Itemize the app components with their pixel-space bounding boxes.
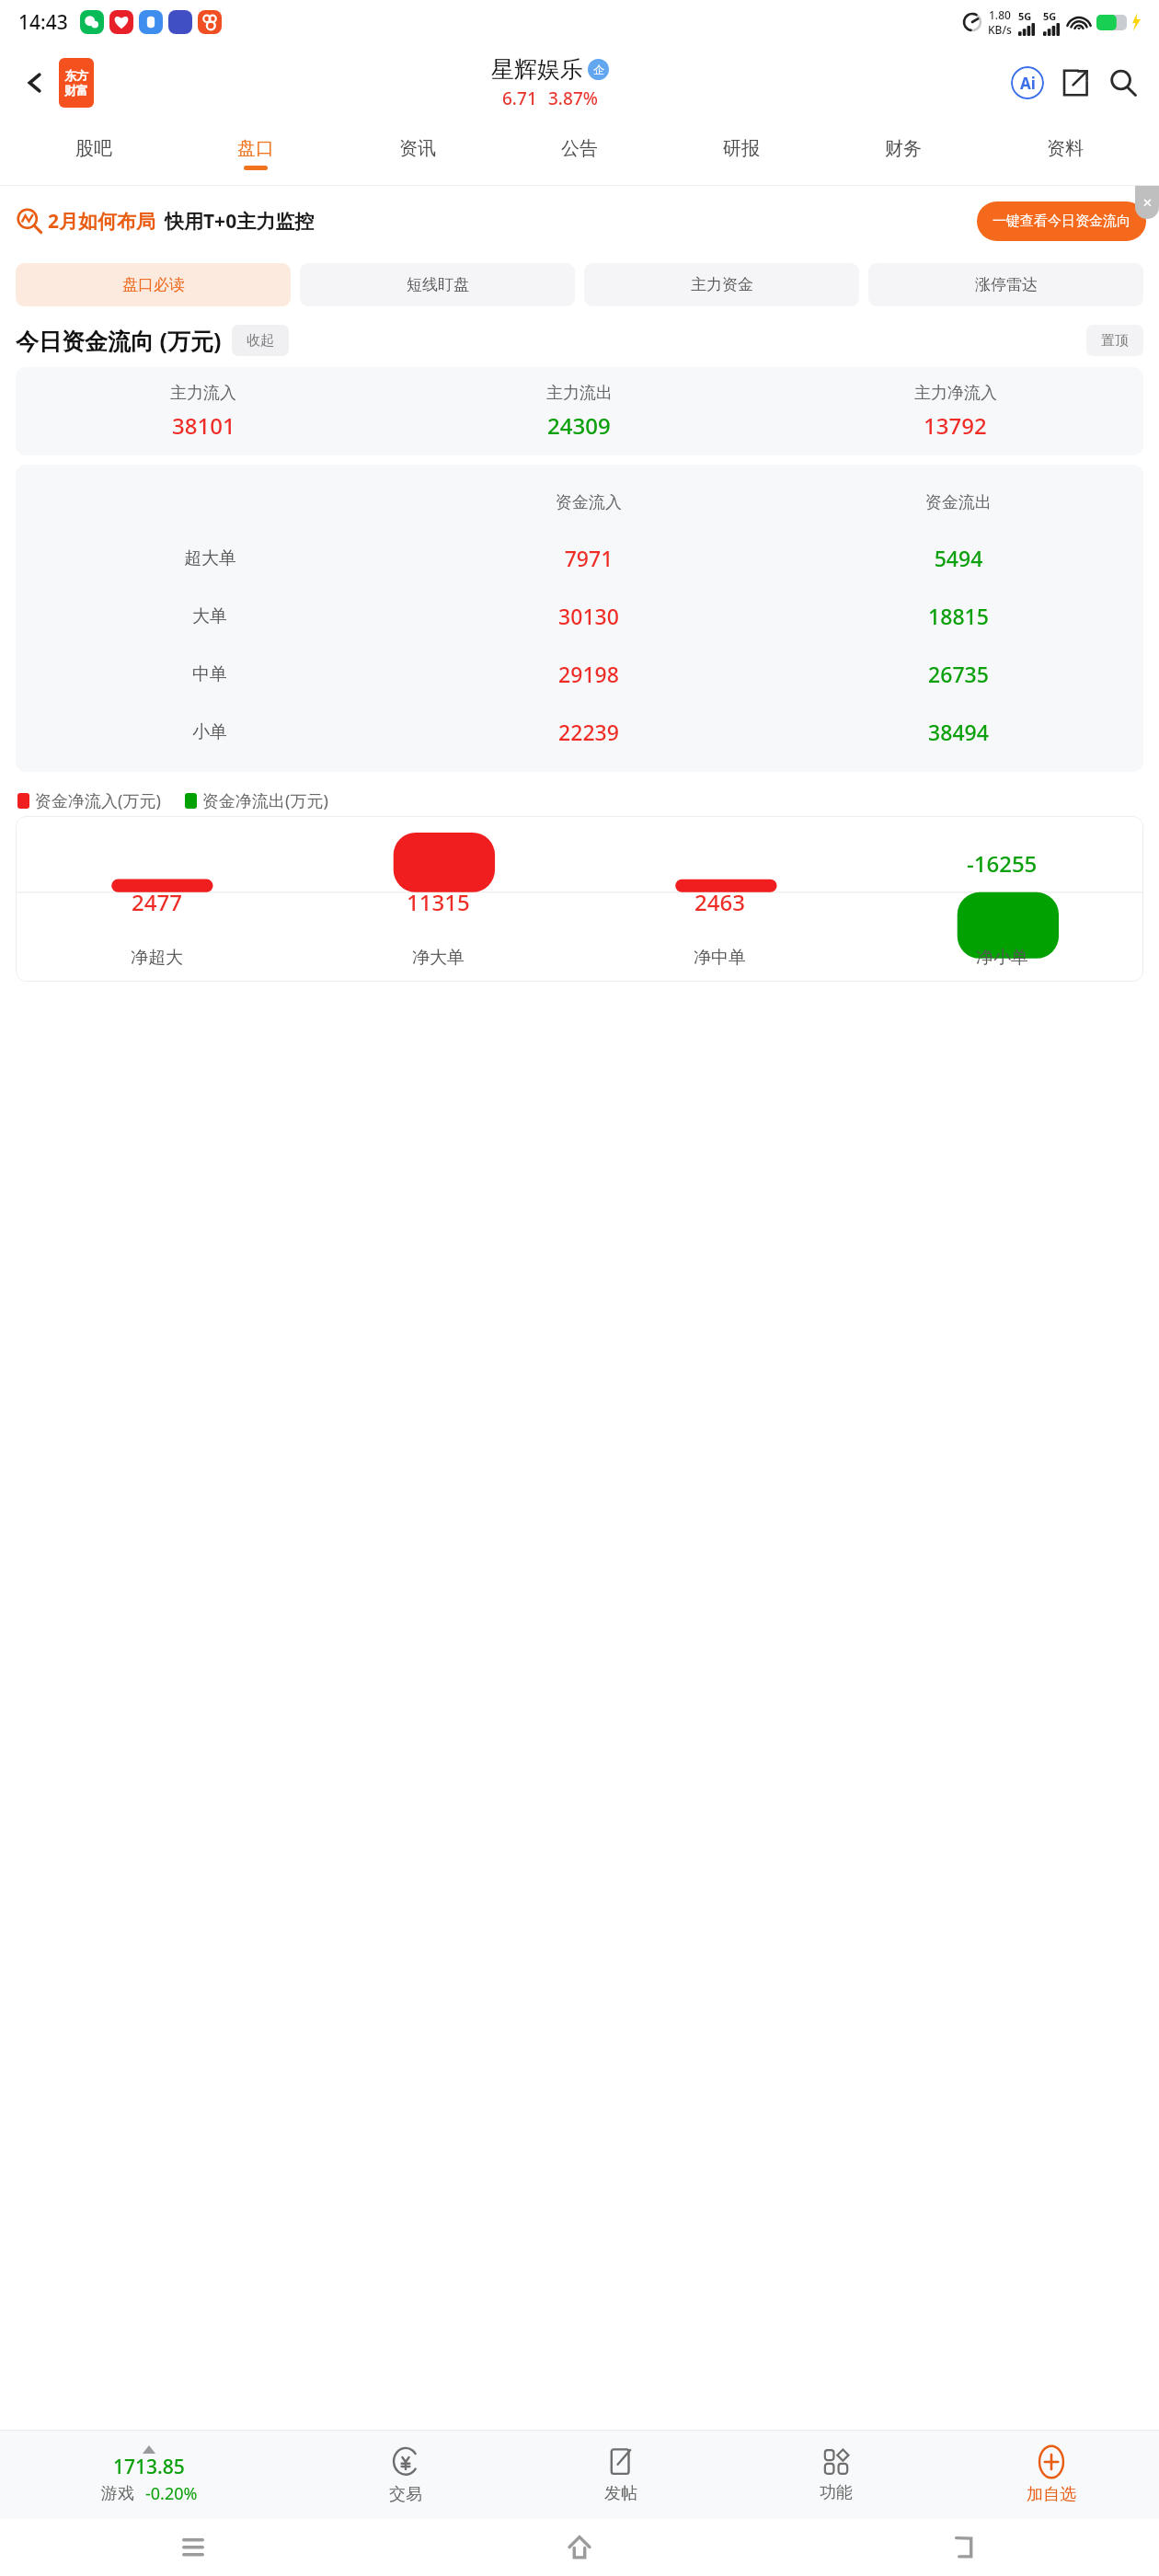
staticText: 主力流入 — [170, 383, 236, 404]
staticText: 30130 — [404, 602, 774, 630]
staticText: 研报 — [723, 137, 760, 160]
button[interactable]: 收起 — [232, 325, 289, 356]
staticText: 资金流出 — [774, 492, 1143, 513]
button[interactable]: 发帖 — [513, 2431, 729, 2519]
button[interactable]: Close — [1135, 186, 1159, 219]
staticText: 5G — [1018, 9, 1032, 23]
button[interactable]: Back — [773, 2519, 1159, 2576]
staticText: -0.20% — [145, 2482, 198, 2505]
button[interactable]: 1713.85 — [0, 2431, 298, 2519]
button[interactable]: 主力资金 — [584, 263, 859, 306]
staticText: 大单 — [192, 605, 227, 627]
staticText: 交易 — [389, 2484, 422, 2505]
staticText: 中单 — [192, 663, 227, 685]
staticText: 主力资金 — [691, 275, 753, 294]
button[interactable]: 主力流入 — [16, 367, 1143, 455]
staticText: -16255 — [967, 848, 1038, 879]
staticText: 5G — [1043, 9, 1057, 23]
staticText: 净中单 — [694, 947, 746, 969]
staticText: 快用T+0主力监控 — [165, 208, 315, 235]
staticText: 企 — [593, 63, 604, 76]
staticText: 资金净流出(万元) — [202, 789, 328, 812]
staticText: 盘口必读 — [122, 275, 185, 294]
staticText: 资金流入 — [404, 492, 774, 513]
staticText: 资金净流入(万元) — [35, 789, 161, 812]
staticText: 14:43 — [18, 9, 68, 36]
staticText: 主力净流入 — [914, 383, 997, 404]
button[interactable]: 短线盯盘 — [300, 263, 575, 306]
staticText: 3.87% — [548, 86, 598, 110]
staticText: 24309 — [547, 410, 611, 441]
staticText: 18815 — [774, 602, 1143, 630]
staticText: 超大单 — [184, 547, 236, 569]
staticText: 盘口 — [237, 137, 274, 160]
staticText: 净小单 — [976, 947, 1028, 969]
button[interactable]: 一键查看今日资金流向 — [977, 201, 1146, 241]
button[interactable]: 置顶 — [1086, 325, 1143, 356]
staticText: 星辉娱乐 — [491, 55, 583, 84]
button[interactable]: 交易 — [298, 2431, 513, 2519]
button[interactable]: 功能 — [729, 2431, 944, 2519]
staticText: 净大单 — [412, 947, 465, 969]
button[interactable]: AI — [1006, 62, 1049, 104]
staticText: 财务 — [885, 137, 922, 160]
staticText: 一键查看今日资金流向 — [993, 213, 1130, 230]
staticText: 涨停雷达 — [975, 275, 1038, 294]
button[interactable]: Search — [1102, 62, 1144, 104]
staticText: 短线盯盘 — [407, 275, 469, 294]
staticText: 主力流出 — [546, 383, 613, 404]
button[interactable]: 2月如何布局 — [17, 186, 1146, 256]
staticText: 38101 — [172, 410, 235, 441]
button[interactable]: 盘口 — [175, 122, 337, 185]
staticText: 5494 — [774, 544, 1143, 572]
staticText: 财富 — [64, 83, 88, 98]
button[interactable]: 加自选 — [944, 2431, 1159, 2519]
staticText: 29198 — [404, 660, 774, 688]
button[interactable]: Back — [15, 63, 55, 103]
staticText: 26735 — [774, 660, 1143, 688]
button[interactable]: Recents — [0, 2519, 386, 2576]
staticText: 22239 — [404, 718, 774, 746]
staticText: 1713.85 — [113, 2454, 185, 2480]
button[interactable]: Share — [1054, 62, 1096, 104]
button[interactable]: East Money — [59, 58, 94, 108]
staticText: 东方 — [64, 68, 88, 83]
staticText: 38494 — [774, 718, 1143, 746]
staticText: 2月如何布局 — [48, 208, 156, 235]
staticText: KB/s — [988, 22, 1012, 37]
staticText: 6.71 — [502, 86, 537, 110]
staticText: 2477 — [132, 887, 182, 917]
staticText: 7971 — [404, 544, 774, 572]
staticText: 13792 — [924, 410, 987, 441]
staticText: 资料 — [1047, 137, 1084, 160]
staticText: ✕ — [1142, 196, 1153, 210]
button[interactable]: 资料 — [984, 122, 1146, 185]
staticText: 游戏 — [101, 2483, 134, 2504]
staticText: 今日资金流向 (万元) — [16, 325, 222, 356]
staticText: 置顶 — [1101, 332, 1129, 350]
button[interactable]: 2477 — [16, 816, 1143, 982]
button[interactable]: 公告 — [499, 122, 660, 185]
staticText: 功能 — [820, 2482, 853, 2503]
staticText: 收起 — [247, 332, 274, 350]
staticText: 11315 — [407, 887, 470, 917]
button[interactable]: 股吧 — [13, 122, 175, 185]
staticText: 2463 — [694, 887, 745, 917]
button[interactable]: 盘口必读 — [16, 263, 291, 306]
button[interactable]: Home — [386, 2519, 773, 2576]
staticText: 小单 — [192, 721, 227, 743]
button[interactable]: 资讯 — [337, 122, 499, 185]
staticText: 发帖 — [604, 2483, 637, 2504]
staticText: Ai — [1020, 73, 1036, 94]
button[interactable]: 财务 — [822, 122, 984, 185]
button[interactable]: 涨停雷达 — [868, 263, 1143, 306]
staticText: 股吧 — [75, 137, 112, 160]
staticText: 净超大 — [131, 947, 183, 969]
staticText: 资讯 — [399, 137, 436, 160]
staticText: 1.80 — [989, 7, 1011, 22]
staticText: 公告 — [561, 137, 598, 160]
button[interactable]: 研报 — [660, 122, 822, 185]
button[interactable]: 资金流入 — [16, 465, 1143, 772]
staticText: 加自选 — [1027, 2484, 1076, 2505]
